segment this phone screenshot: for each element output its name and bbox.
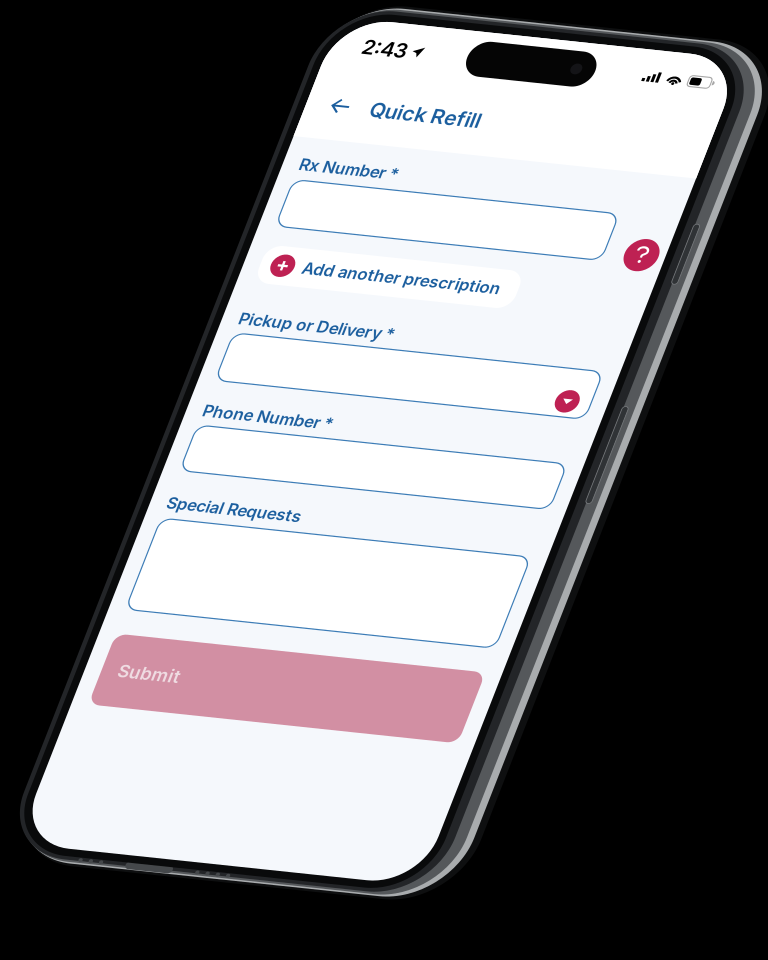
staticText: Special Requests	[16, 489, 147, 509]
button[interactable]: Submit	[16, 634, 377, 707]
button[interactable]: Choose pickup or delivery	[339, 343, 369, 371]
button[interactable]: Add another prescription	[16, 233, 267, 272]
staticText: Submit	[32, 660, 92, 681]
staticText: Add another prescription	[57, 243, 250, 262]
button[interactable]: Help	[351, 188, 389, 221]
